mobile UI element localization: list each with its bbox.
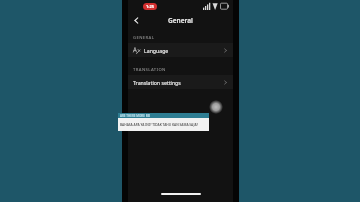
button[interactable]: Language [128, 43, 233, 57]
staticText: BAHASA APA YA INI? TIDAK TAHU KAN SAMA S… [120, 123, 199, 127]
staticText: GENERAL [133, 35, 155, 41]
staticText: 1:25 [146, 4, 154, 9]
button[interactable]: Translation settings [128, 75, 233, 89]
staticText: ARE THERE MORE ME [120, 114, 151, 118]
button[interactable]: ARE THERE MORE ME [118, 113, 209, 131]
staticText: TRANSLATION [133, 67, 166, 73]
button[interactable]: Back [128, 12, 144, 28]
staticText: General [168, 16, 193, 25]
staticText: Translation settings [133, 79, 181, 86]
staticText: Language [144, 47, 169, 54]
